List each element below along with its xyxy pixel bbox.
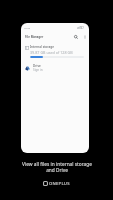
staticText: Drive [33, 64, 41, 68]
staticText: ONEPLUS [49, 181, 70, 187]
staticText: View all files in internal storage and D… [22, 161, 92, 173]
staticText: Sign in [33, 68, 43, 72]
staticText: 10:25 [24, 26, 31, 29]
staticText: Internal storage [30, 45, 54, 49]
button[interactable]: Internal storage [21, 44, 89, 60]
staticText: 39.87 GB used of 128 GB [30, 50, 73, 55]
button[interactable]: More options [81, 33, 89, 41]
button[interactable]: Drive [21, 63, 89, 75]
button[interactable]: Search [72, 33, 80, 41]
staticText: File Manager [25, 35, 44, 39]
